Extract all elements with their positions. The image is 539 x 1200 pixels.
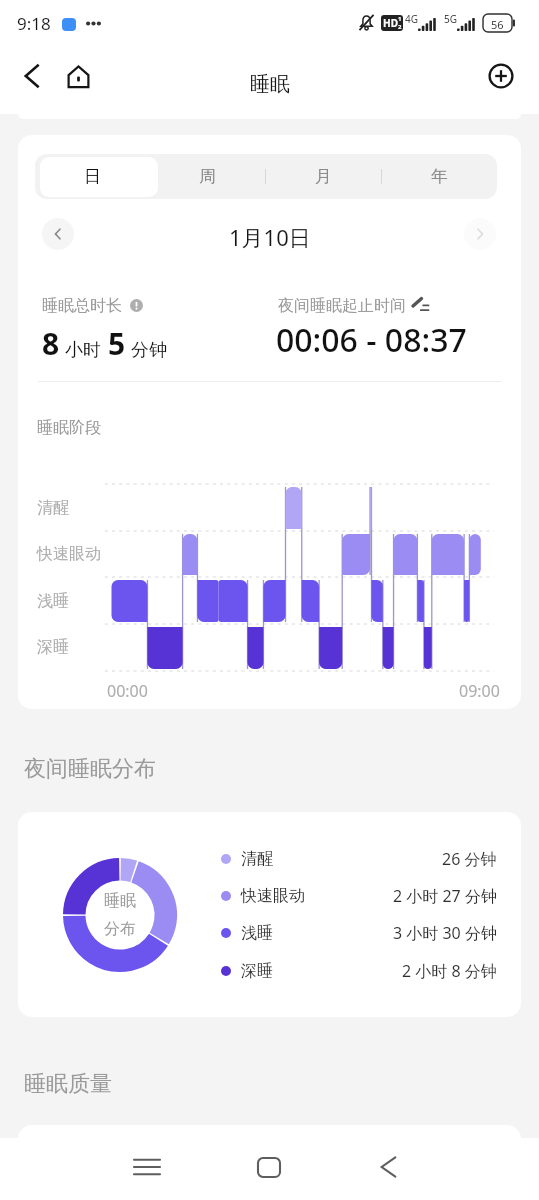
button[interactable]: 年	[381, 154, 497, 199]
staticText: 56	[491, 17, 504, 32]
button[interactable]: Back	[360, 1139, 416, 1195]
staticText: 夜间睡眠分布	[24, 755, 156, 783]
staticText: 00:06 - 08:37	[276, 318, 467, 362]
staticText: 09:00	[459, 680, 500, 702]
staticText: 5G	[444, 12, 457, 26]
staticText: 4G	[405, 12, 418, 26]
staticText: 年	[431, 166, 448, 187]
staticText: 睡眠	[250, 72, 290, 97]
staticText: 9:18	[17, 12, 51, 35]
button[interactable]: Home	[241, 1139, 297, 1195]
staticText: 分布	[104, 919, 136, 939]
button[interactable]: Previous day	[42, 218, 74, 250]
button[interactable]: Back	[12, 56, 52, 96]
staticText: 清醒	[37, 498, 69, 518]
staticText: 浅睡	[241, 923, 273, 943]
staticText: 快速眼动	[37, 544, 101, 564]
staticText: 26 分钟	[442, 848, 497, 870]
button[interactable]: Home	[58, 56, 98, 96]
button[interactable]: 月	[265, 154, 381, 199]
button[interactable]: Add	[481, 56, 521, 96]
staticText: 清醒	[241, 849, 273, 869]
staticText: 00:00	[107, 680, 148, 702]
button[interactable]: 日	[35, 154, 150, 199]
staticText: 日	[84, 166, 101, 187]
staticText: 2	[398, 23, 402, 31]
button[interactable]: 周	[150, 154, 265, 199]
staticText: 浅睡	[37, 591, 69, 611]
staticText: 8	[42, 323, 60, 364]
staticText: 小时	[65, 339, 101, 362]
staticText: 2 小时 27 分钟	[393, 885, 497, 907]
staticText: 睡眠阶段	[37, 418, 101, 438]
staticText: 深睡	[241, 961, 273, 981]
staticText: 快速眼动	[241, 886, 305, 906]
staticText: 睡眠	[104, 891, 136, 911]
staticText: 1	[398, 15, 402, 23]
staticText: 2 小时 8 分钟	[402, 960, 497, 982]
staticText: 睡眠质量	[24, 1070, 112, 1098]
staticText: 月	[315, 166, 332, 187]
staticText: 分钟	[131, 339, 167, 362]
button[interactable]: Recent apps	[119, 1139, 175, 1195]
staticText: HD	[383, 16, 398, 30]
staticText: 深睡	[37, 637, 69, 657]
staticText: 周	[199, 166, 216, 187]
button[interactable]: Next day	[464, 218, 496, 250]
staticText: 睡眠总时长	[42, 296, 122, 316]
staticText: 5	[108, 323, 126, 364]
staticText: 3 小时 30 分钟	[393, 922, 497, 944]
staticText: 1月10日	[229, 222, 311, 252]
staticText: 夜间睡眠起止时间	[278, 296, 406, 316]
